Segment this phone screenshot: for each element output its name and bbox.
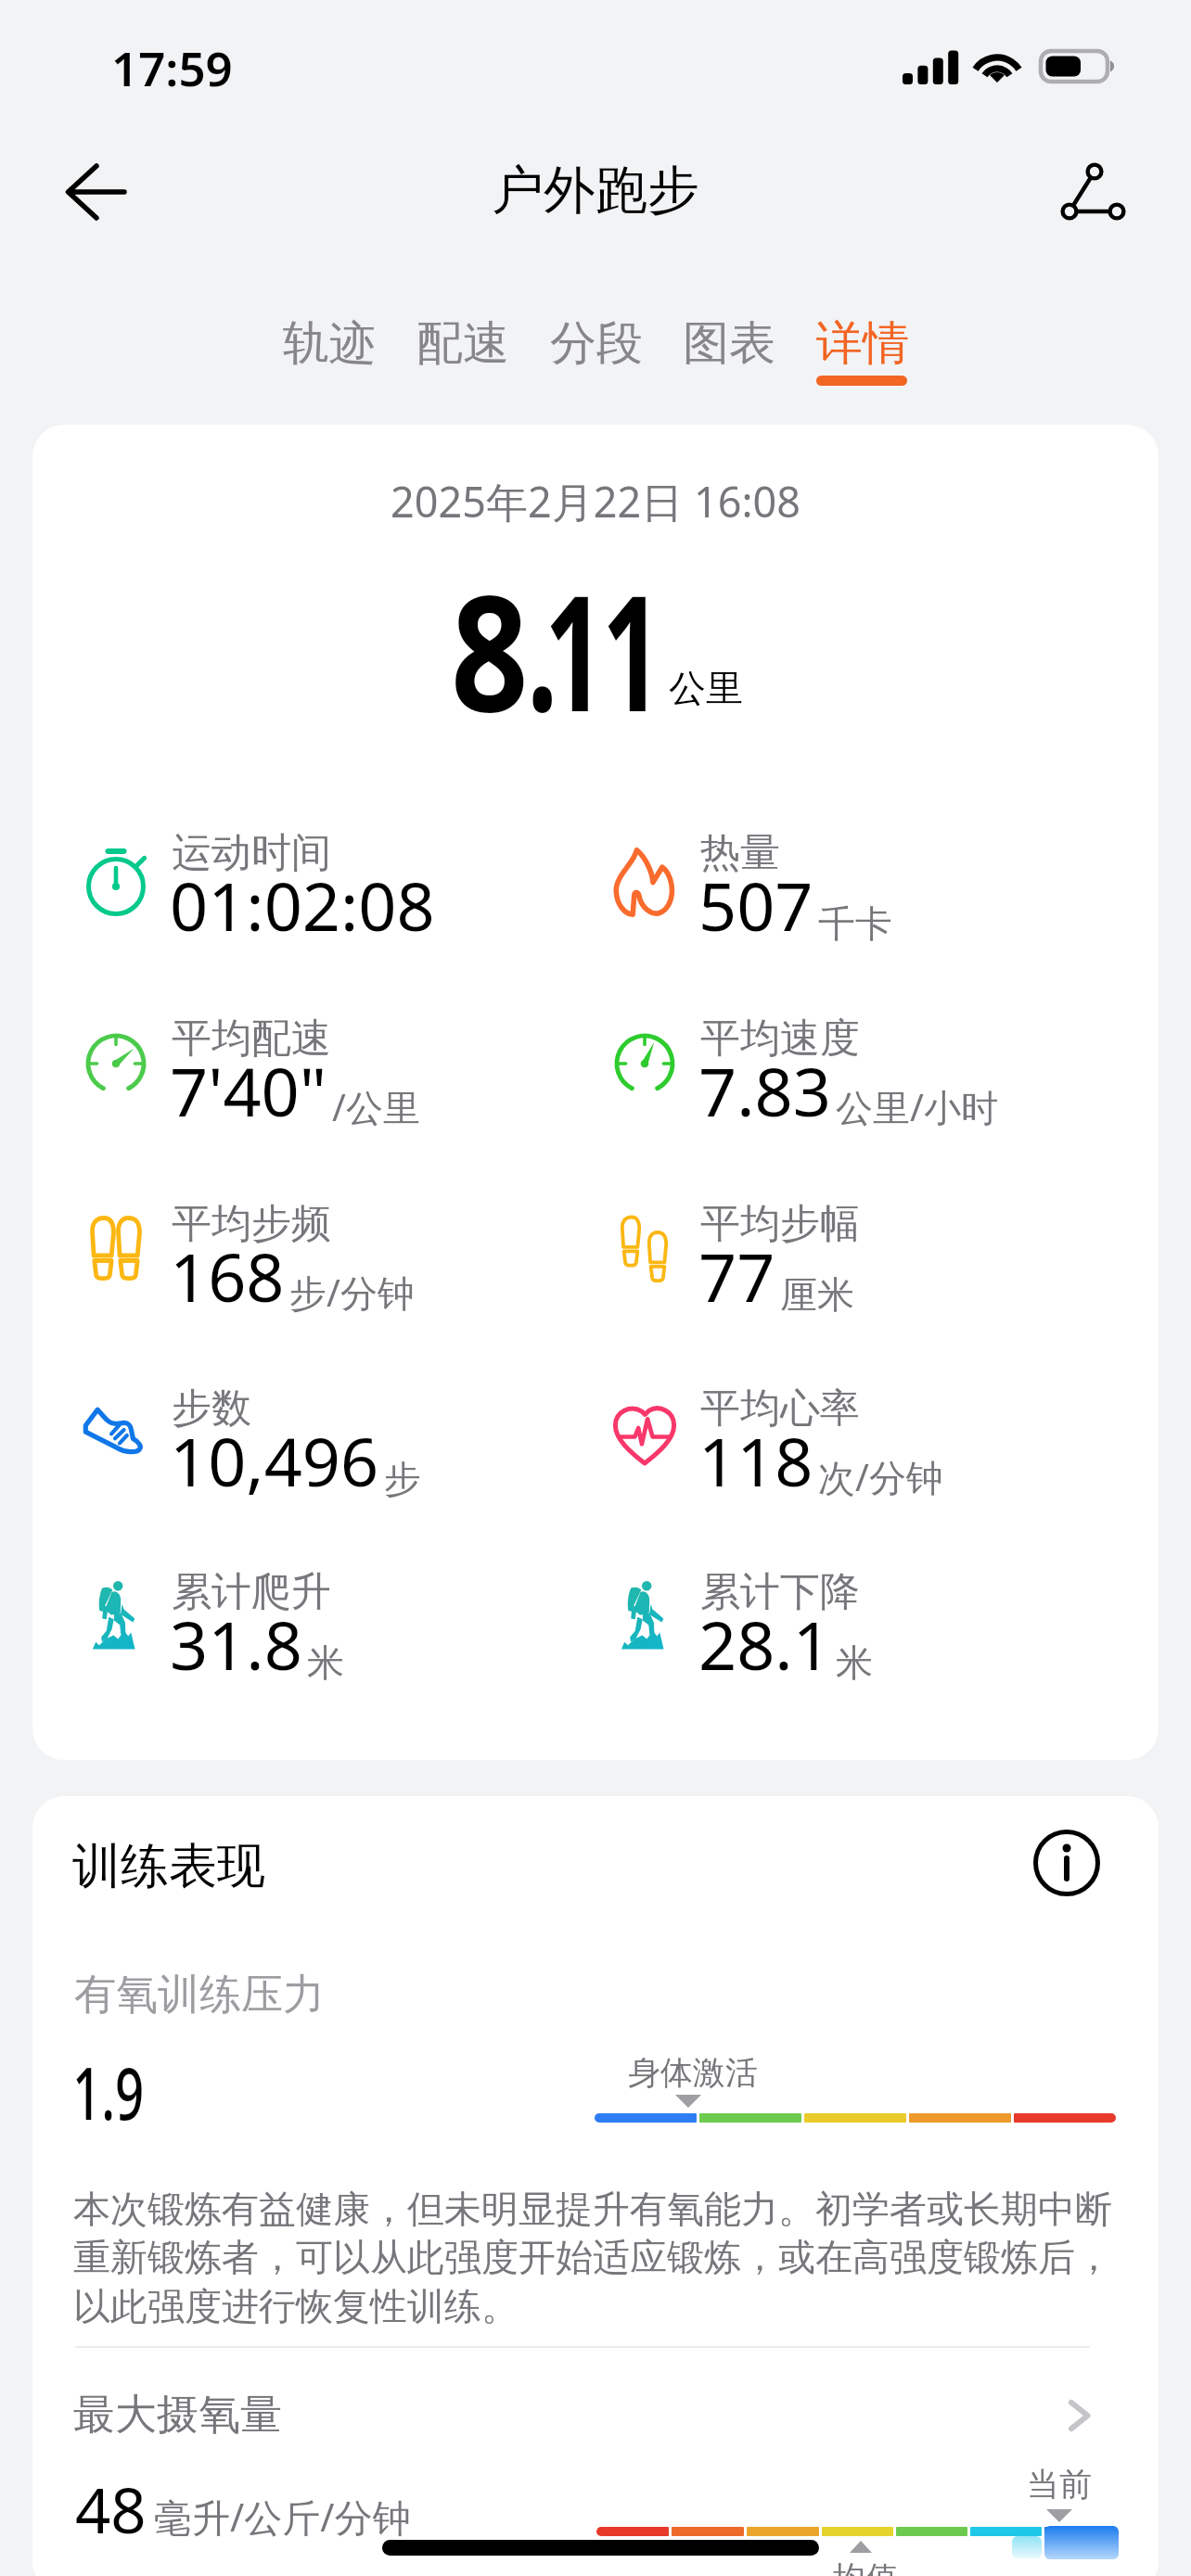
- button[interactable]: 平均步频: [86, 1192, 601, 1312]
- staticText: 本次锻炼有益健康，但未明显提升有氧能力。初学者或长期中断重新锻炼者，可以从此强度…: [73, 2186, 1116, 2330]
- staticText: 平均步幅: [700, 1199, 860, 1249]
- staticText: 千卡: [818, 900, 892, 947]
- staticText: 118: [698, 1415, 813, 1506]
- staticText: 详情: [816, 314, 909, 373]
- button[interactable]: 轨迹: [263, 306, 394, 391]
- staticText: 平均配速: [172, 1014, 331, 1064]
- staticText: 8: [451, 541, 529, 758]
- button[interactable]: 累计爬升: [86, 1560, 601, 1680]
- staticText: 身体激活: [628, 2052, 758, 2093]
- staticText: /公里: [332, 1081, 420, 1132]
- staticText: 步: [384, 1456, 421, 1502]
- button[interactable]: Share route: [1043, 147, 1146, 251]
- staticText: 平均速度: [700, 1014, 860, 1064]
- staticText: 热量: [700, 828, 780, 878]
- staticText: 48: [75, 2467, 147, 2551]
- staticText: 分段: [550, 314, 643, 373]
- button[interactable]: Info: [1025, 1821, 1108, 1905]
- staticText: 配速: [416, 314, 509, 373]
- staticText: 17:59: [111, 35, 233, 99]
- staticText: 1: [602, 541, 663, 758]
- staticText: 507: [698, 860, 813, 950]
- staticText: 1: [544, 541, 605, 758]
- staticText: 7.83: [698, 1045, 831, 1136]
- staticText: 米: [307, 1639, 344, 1686]
- button[interactable]: 热量: [615, 821, 1130, 941]
- staticText: 77: [698, 1231, 775, 1321]
- button[interactable]: 平均配速: [86, 1006, 601, 1127]
- staticText: 厘米: [780, 1271, 854, 1318]
- staticText: 步/分钟: [289, 1267, 415, 1318]
- staticText: 31.8: [170, 1599, 302, 1690]
- button[interactable]: 详情: [796, 306, 928, 391]
- button[interactable]: 平均心率: [615, 1376, 1130, 1497]
- staticText: 10,496: [170, 1415, 379, 1506]
- staticText: 训练表现: [72, 1836, 265, 1897]
- button[interactable]: 累计下降: [615, 1560, 1130, 1680]
- staticText: 平均心率: [700, 1384, 860, 1434]
- staticText: 户外跑步: [492, 158, 699, 223]
- staticText: 1.9: [72, 2043, 144, 2141]
- staticText: 公里: [669, 665, 743, 711]
- staticText: 01:02:08: [170, 860, 435, 950]
- button[interactable]: 步数: [86, 1376, 601, 1497]
- staticText: 米: [836, 1639, 873, 1686]
- button[interactable]: 最大摄氧量: [73, 2389, 1098, 2442]
- button[interactable]: 平均步幅: [615, 1192, 1130, 1312]
- button[interactable]: 图表: [662, 306, 794, 391]
- button[interactable]: 分段: [530, 306, 661, 391]
- button[interactable]: 平均速度: [615, 1006, 1130, 1127]
- staticText: 均值: [833, 2557, 898, 2576]
- staticText: 7'40": [170, 1045, 327, 1136]
- staticText: 累计爬升: [172, 1567, 331, 1617]
- staticText: .: [527, 541, 558, 758]
- button[interactable]: 配速: [396, 306, 528, 391]
- staticText: 步数: [172, 1384, 251, 1434]
- staticText: 图表: [683, 314, 775, 373]
- staticText: 次/分钟: [818, 1451, 943, 1502]
- staticText: 2025年2月22日 16:08: [32, 473, 1159, 529]
- staticText: 累计下降: [700, 1567, 860, 1617]
- staticText: 最大摄氧量: [73, 2389, 282, 2442]
- staticText: 有氧训练压力: [74, 1969, 325, 2021]
- staticText: 28.1: [698, 1599, 831, 1690]
- button[interactable]: Back: [45, 148, 149, 252]
- staticText: 毫升/公斤/分钟: [154, 2491, 411, 2543]
- staticText: 轨迹: [283, 314, 376, 373]
- staticText: 运动时间: [172, 828, 331, 878]
- button[interactable]: 运动时间: [86, 821, 601, 941]
- staticText: 公里/小时: [836, 1081, 998, 1132]
- staticText: 168: [170, 1231, 285, 1321]
- staticText: 平均步频: [172, 1199, 331, 1249]
- staticText: 当前: [1027, 2464, 1092, 2505]
